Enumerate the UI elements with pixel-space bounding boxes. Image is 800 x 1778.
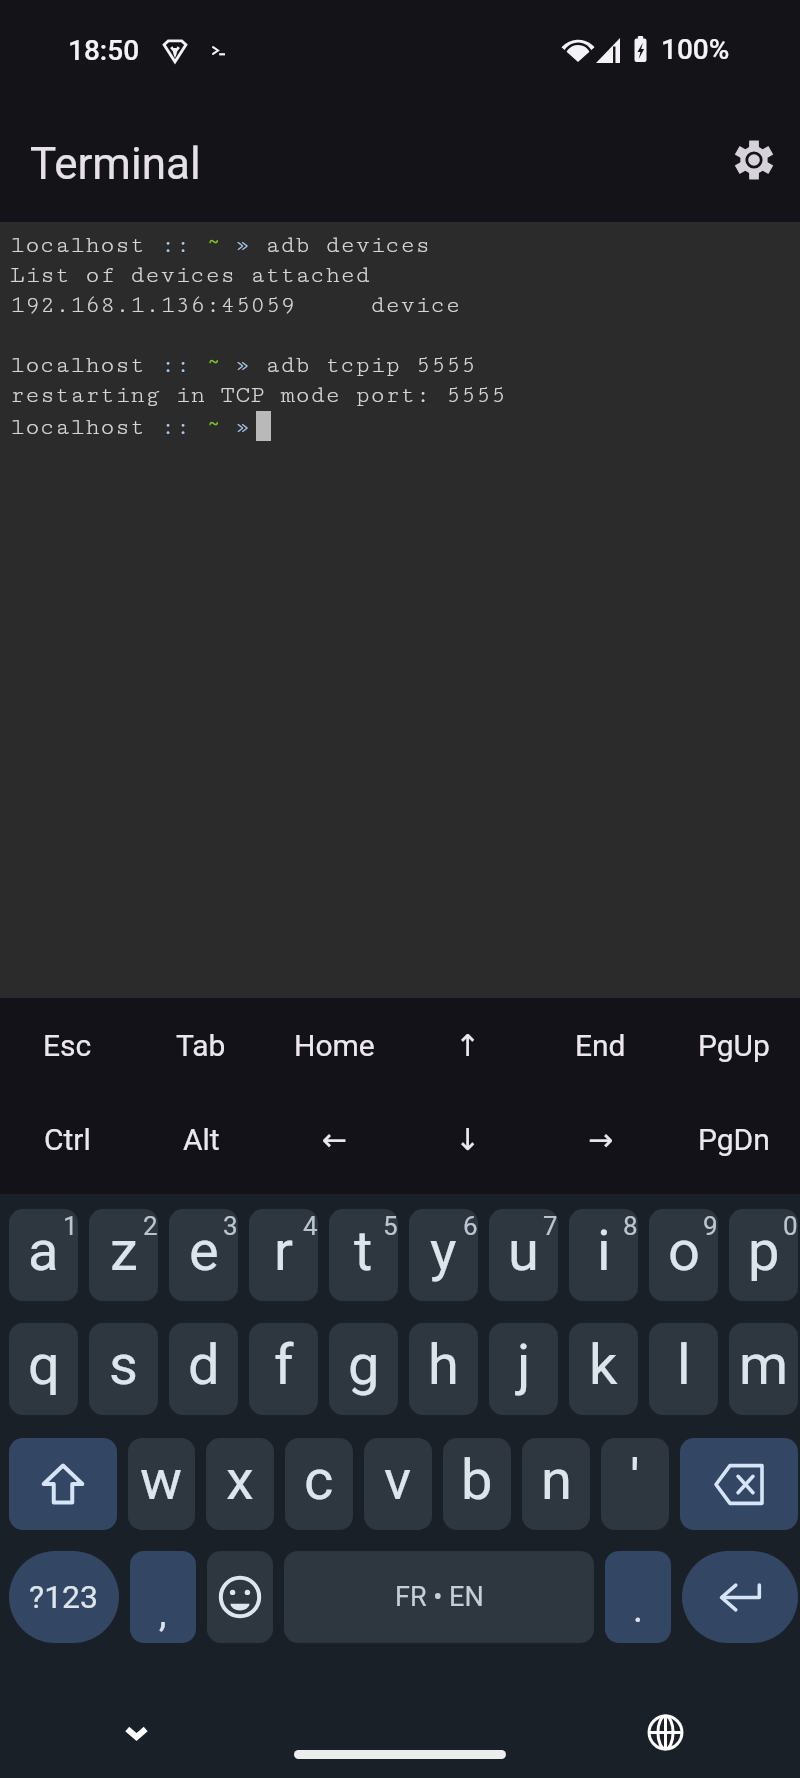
button[interactable]: f xyxy=(249,1323,318,1415)
staticText: localhost :: ~ » xyxy=(10,413,251,440)
button[interactable]: n xyxy=(522,1438,590,1530)
button[interactable]: u xyxy=(489,1209,558,1301)
button[interactable]: Ctrl xyxy=(0,1092,134,1186)
button[interactable]: End xyxy=(534,998,667,1092)
staticText: 7 xyxy=(543,1211,558,1241)
staticText: 1 xyxy=(63,1211,78,1241)
staticText: w xyxy=(140,1447,183,1513)
staticText: c xyxy=(304,1447,334,1513)
button[interactable]: d xyxy=(169,1323,238,1415)
button[interactable]: localhost :: ~ » adb devices xyxy=(0,222,800,998)
button[interactable]: Backspace xyxy=(680,1438,798,1530)
button[interactable]: ← xyxy=(268,1092,401,1186)
button[interactable]: PgUp xyxy=(667,998,800,1092)
staticText: . xyxy=(633,1587,644,1632)
staticText: Terminal xyxy=(30,138,201,190)
staticText: y xyxy=(430,1218,457,1284)
staticText: g xyxy=(348,1332,380,1398)
button[interactable]: k xyxy=(569,1323,638,1415)
staticText: n xyxy=(541,1447,572,1513)
button[interactable]: FR • EN xyxy=(284,1551,594,1643)
button[interactable]: Hide keyboard xyxy=(106,1703,166,1763)
button[interactable]: Tab xyxy=(134,998,268,1092)
button[interactable]: ↑ xyxy=(401,998,534,1092)
button[interactable]: Alt xyxy=(134,1092,268,1186)
button[interactable]: b xyxy=(443,1438,511,1530)
button[interactable]: m xyxy=(729,1323,798,1415)
button[interactable]: ↓ xyxy=(401,1092,534,1186)
staticText: 100% xyxy=(661,33,730,66)
staticText: f xyxy=(274,1332,294,1398)
button[interactable]: r xyxy=(249,1209,318,1301)
button[interactable]: Home xyxy=(268,998,401,1092)
staticText: PgUp xyxy=(698,1028,770,1063)
button[interactable]: v xyxy=(364,1438,432,1530)
button[interactable]: h xyxy=(409,1323,478,1415)
staticText: Ctrl xyxy=(44,1122,91,1157)
button[interactable]: o xyxy=(649,1209,718,1301)
button[interactable]: . xyxy=(605,1551,671,1643)
staticText: e xyxy=(189,1218,219,1284)
staticText: t xyxy=(354,1218,373,1284)
staticText: ?123 xyxy=(29,1578,99,1616)
button[interactable]: x xyxy=(206,1438,274,1530)
staticText: ' xyxy=(630,1447,640,1513)
button[interactable]: Change language xyxy=(635,1702,695,1762)
staticText: q xyxy=(28,1332,60,1398)
staticText: s xyxy=(109,1332,138,1398)
staticText: h xyxy=(428,1332,459,1398)
button[interactable]: e xyxy=(169,1209,238,1301)
staticText: z xyxy=(110,1218,138,1284)
staticText: 4 xyxy=(303,1211,318,1241)
button[interactable]: w xyxy=(128,1438,195,1530)
button[interactable]: ' xyxy=(601,1438,669,1530)
button[interactable]: a xyxy=(9,1209,78,1301)
staticText: Home xyxy=(294,1028,375,1063)
staticText: o xyxy=(668,1218,700,1284)
button[interactable]: → xyxy=(534,1092,667,1186)
staticText: a xyxy=(28,1218,59,1284)
button[interactable]: p xyxy=(729,1209,798,1301)
button[interactable]: Enter xyxy=(682,1551,798,1643)
staticText: Tab xyxy=(176,1028,226,1063)
button[interactable]: l xyxy=(649,1323,718,1415)
staticText: PgDn xyxy=(698,1122,770,1157)
button[interactable]: c xyxy=(285,1438,353,1530)
staticText: r xyxy=(274,1218,293,1284)
button[interactable]: , xyxy=(130,1551,196,1643)
staticText: Esc xyxy=(43,1028,92,1063)
button[interactable]: PgDn xyxy=(667,1092,800,1186)
button[interactable]: Shift xyxy=(9,1438,117,1530)
button[interactable]: s xyxy=(89,1323,158,1415)
button[interactable]: z xyxy=(89,1209,158,1301)
staticText: localhost :: ~ » adb devices xyxy=(10,231,431,261)
staticText: FR • EN xyxy=(395,1581,484,1613)
staticText: j xyxy=(517,1332,531,1398)
button[interactable]: g xyxy=(329,1323,398,1415)
button[interactable]: Emoji xyxy=(207,1551,273,1643)
staticText: 192.168.1.136:45059 device xyxy=(10,291,461,321)
staticText: ↑ xyxy=(455,1028,481,1063)
staticText: ↓ xyxy=(455,1122,481,1157)
staticText: 2 xyxy=(143,1211,158,1241)
button[interactable]: Esc xyxy=(0,998,134,1092)
staticText: v xyxy=(384,1447,412,1513)
staticText: localhost :: ~ » adb tcpip 5555 xyxy=(10,351,476,381)
staticText: l xyxy=(677,1332,691,1398)
button[interactable]: y xyxy=(409,1209,478,1301)
staticText: m xyxy=(739,1332,789,1398)
staticText: b xyxy=(461,1447,493,1513)
staticText: 5 xyxy=(383,1211,398,1241)
staticText: 6 xyxy=(463,1211,478,1241)
button[interactable]: q xyxy=(9,1323,78,1415)
button[interactable]: t xyxy=(329,1209,398,1301)
staticText: 18:50 xyxy=(68,34,140,67)
button[interactable]: Settings xyxy=(716,122,792,198)
button[interactable]: i xyxy=(569,1209,638,1301)
staticText: ← xyxy=(322,1122,348,1157)
button[interactable]: j xyxy=(489,1323,558,1415)
staticText: 0 xyxy=(783,1211,798,1241)
button[interactable]: ?123 xyxy=(9,1551,119,1643)
staticText: End xyxy=(575,1028,626,1063)
